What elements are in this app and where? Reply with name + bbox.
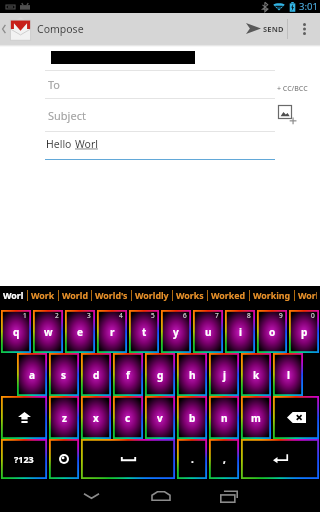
button[interactable]: b	[177, 396, 207, 439]
staticText: z	[62, 411, 67, 425]
button[interactable]: o	[257, 310, 287, 353]
staticText: Worked	[211, 290, 246, 302]
staticText: Working	[253, 290, 291, 302]
button[interactable]: z	[49, 396, 79, 439]
button[interactable]: Hide keyboard	[57, 480, 125, 512]
staticText: k	[253, 368, 260, 382]
staticText: World	[62, 290, 88, 302]
button[interactable]: ?123	[1, 439, 47, 479]
staticText: Work	[31, 290, 55, 302]
staticText: 9	[279, 311, 283, 320]
button[interactable]: v	[145, 396, 175, 439]
button[interactable]: Enter	[241, 439, 319, 479]
button[interactable]: l	[273, 353, 303, 396]
button[interactable]: World's	[92, 286, 131, 305]
staticText: Worl	[75, 137, 98, 151]
staticText: 7	[215, 311, 219, 320]
staticText: Worldly	[135, 290, 169, 302]
other: Navigate up	[2, 24, 6, 34]
button[interactable]: k	[241, 353, 271, 396]
button[interactable]: i	[225, 310, 255, 353]
staticText: x	[93, 411, 99, 425]
button[interactable]: u	[193, 310, 223, 353]
button[interactable]: Subject	[0, 99, 320, 131]
staticText: w	[44, 325, 53, 339]
staticText: 5	[151, 311, 155, 320]
staticText: 3:01	[299, 0, 318, 13]
staticText: m	[251, 411, 261, 425]
button[interactable]: a	[17, 353, 47, 396]
button[interactable]: SEND	[236, 13, 287, 44]
button[interactable]: Shift	[1, 396, 47, 439]
staticText: q	[13, 325, 20, 339]
staticText: j	[223, 368, 226, 382]
staticText: p	[301, 325, 308, 339]
staticText: r	[110, 325, 115, 339]
staticText: y	[173, 325, 179, 339]
button[interactable]: d	[81, 353, 111, 396]
staticText: 8	[247, 311, 251, 320]
button[interactable]: To	[0, 71, 320, 98]
button[interactable]: Worker	[295, 286, 320, 305]
button[interactable]: x	[81, 396, 111, 439]
button[interactable]: Worldly	[132, 286, 172, 305]
staticText: ,	[223, 452, 226, 466]
button[interactable]: n	[209, 396, 239, 439]
button[interactable]: f	[113, 353, 143, 396]
staticText: To	[48, 77, 61, 92]
button[interactable]: Home	[127, 480, 195, 512]
staticText: u	[205, 325, 212, 339]
staticText: 3	[87, 311, 91, 320]
staticText: l	[287, 368, 290, 382]
staticText: i	[239, 325, 242, 339]
staticText: SEND	[263, 24, 284, 34]
staticText: v	[157, 411, 163, 425]
button[interactable]: World	[59, 286, 91, 305]
button[interactable]: Worked	[208, 286, 249, 305]
button[interactable]: .	[177, 439, 207, 479]
button[interactable]: h	[177, 353, 207, 396]
button[interactable]: w	[33, 310, 63, 353]
button[interactable]: Recent apps	[195, 480, 263, 512]
button[interactable]: g	[145, 353, 175, 396]
button[interactable]: t	[129, 310, 159, 353]
staticText: .	[191, 452, 194, 466]
staticText: 0	[311, 311, 315, 320]
staticText: Worker	[298, 290, 317, 302]
button[interactable]: c	[113, 396, 143, 439]
button[interactable]: r	[97, 310, 127, 353]
button[interactable]: q	[1, 310, 31, 353]
staticText: ?123	[14, 453, 34, 465]
staticText: Hello	[46, 137, 75, 151]
button[interactable]: s	[49, 353, 79, 396]
button[interactable]: More options	[288, 13, 320, 44]
button[interactable]: Worl	[0, 286, 27, 305]
staticText: e	[77, 325, 83, 339]
button[interactable]: Navigate up	[0, 13, 90, 44]
staticText: Worl	[3, 290, 24, 302]
button[interactable]: Backspace	[273, 396, 319, 439]
button[interactable]: Working	[250, 286, 294, 305]
staticText: 2	[55, 311, 59, 320]
button[interactable]: Works	[173, 286, 207, 305]
button[interactable]: e	[65, 310, 95, 353]
staticText: + CC/BCC	[277, 84, 308, 94]
staticText: h	[189, 368, 196, 382]
staticText: t	[142, 325, 147, 339]
button[interactable]: Work	[28, 286, 58, 305]
button[interactable]: y	[161, 310, 191, 353]
button[interactable]: Emoji	[49, 439, 79, 479]
button[interactable]: m	[241, 396, 271, 439]
staticText: c	[125, 411, 131, 425]
staticText: 4	[119, 311, 123, 320]
staticText: b	[189, 411, 196, 425]
staticText: Compose	[37, 22, 84, 36]
button[interactable]: j	[209, 353, 239, 396]
staticText: o	[269, 325, 276, 339]
staticText: n	[221, 411, 228, 425]
button[interactable]: Space	[81, 439, 175, 479]
staticText: Works	[176, 290, 204, 302]
button[interactable]: ,	[209, 439, 239, 479]
button[interactable]: p	[289, 310, 319, 353]
button[interactable]: Attach image	[278, 105, 297, 125]
